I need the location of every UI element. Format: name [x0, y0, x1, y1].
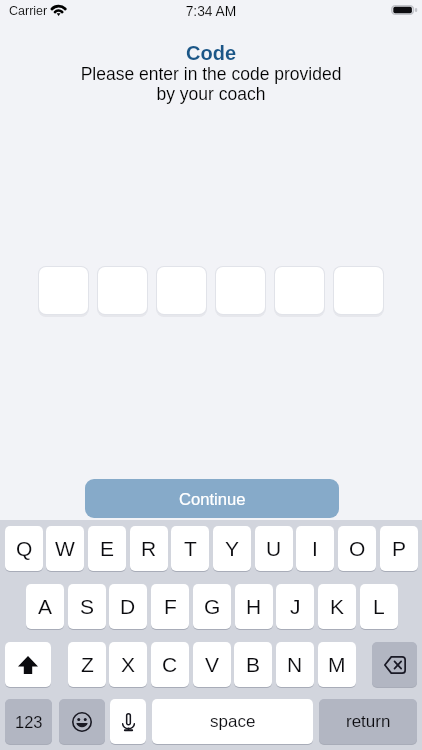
staticText: 123	[15, 713, 43, 731]
staticText: B	[246, 653, 261, 676]
staticText: Q	[16, 537, 33, 560]
button[interactable]: R	[130, 526, 168, 571]
staticText: Code	[0, 42, 422, 64]
button[interactable]: S	[68, 584, 106, 629]
button[interactable]: J	[276, 584, 314, 629]
button[interactable]: return	[319, 699, 417, 744]
button[interactable]: Z	[68, 642, 106, 687]
button[interactable]: Dictation	[110, 699, 146, 744]
staticText: A	[38, 595, 53, 618]
staticText: P	[392, 537, 407, 560]
button[interactable]: O	[338, 526, 376, 571]
button[interactable]: E	[88, 526, 126, 571]
button[interactable]: D	[109, 584, 147, 629]
staticText: S	[80, 595, 95, 618]
button[interactable]: Emoji keyboard	[59, 699, 105, 744]
staticText: C	[162, 653, 178, 676]
staticText: Please enter in the code provided by you…	[0, 64, 422, 104]
staticText: Carrier	[9, 4, 48, 18]
staticText: space	[210, 712, 256, 731]
staticText: K	[330, 595, 345, 618]
staticText: R	[141, 537, 157, 560]
button[interactable]: P	[380, 526, 418, 571]
button[interactable]: Y	[213, 526, 251, 571]
button[interactable]: F	[151, 584, 189, 629]
button[interactable]: Code digit 6	[334, 267, 383, 314]
staticText: F	[164, 595, 177, 618]
button[interactable]: Code digit 2	[98, 267, 147, 314]
staticText: M	[328, 653, 346, 676]
button[interactable]: Shift	[5, 642, 51, 687]
staticText: N	[287, 653, 303, 676]
button[interactable]: 123	[5, 699, 52, 744]
button[interactable]: N	[276, 642, 314, 687]
staticText: X	[121, 653, 136, 676]
button[interactable]: X	[109, 642, 147, 687]
button[interactable]: I	[296, 526, 334, 571]
button[interactable]: C	[151, 642, 189, 687]
button[interactable]: Backspace	[372, 642, 417, 687]
staticText: H	[246, 595, 262, 618]
staticText: O	[349, 537, 366, 560]
button[interactable]: Code digit 5	[275, 267, 324, 314]
button[interactable]: M	[318, 642, 356, 687]
staticText: Continue	[179, 490, 246, 509]
button[interactable]: Code digit 3	[157, 267, 206, 314]
staticText: E	[100, 537, 115, 560]
button[interactable]: L	[360, 584, 398, 629]
button[interactable]: G	[193, 584, 231, 629]
button[interactable]: K	[318, 584, 356, 629]
staticText: I	[312, 537, 318, 560]
staticText: Z	[81, 653, 94, 676]
button[interactable]: H	[235, 584, 273, 629]
staticText: G	[204, 595, 221, 618]
staticText: return	[346, 712, 391, 731]
button[interactable]: U	[255, 526, 293, 571]
button[interactable]: Continue	[85, 479, 339, 518]
button[interactable]: Code digit 4	[216, 267, 265, 314]
button[interactable]: space	[152, 699, 313, 744]
button[interactable]: Code digit 1	[39, 267, 88, 314]
staticText: V	[205, 653, 220, 676]
staticText: D	[120, 595, 136, 618]
staticText: W	[55, 537, 75, 560]
button[interactable]: V	[193, 642, 231, 687]
staticText: L	[373, 595, 385, 618]
button[interactable]: T	[171, 526, 209, 571]
button[interactable]: A	[26, 584, 64, 629]
button[interactable]: W	[46, 526, 84, 571]
button[interactable]: Q	[5, 526, 43, 571]
staticText: J	[290, 595, 301, 618]
button[interactable]: B	[234, 642, 272, 687]
staticText: 7:34 AM	[0, 4, 422, 19]
staticText: U	[266, 537, 282, 560]
staticText: T	[184, 537, 197, 560]
staticText: Y	[225, 537, 240, 560]
